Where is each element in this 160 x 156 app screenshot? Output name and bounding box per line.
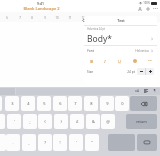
button[interactable]: !: [53, 134, 67, 151]
staticText: Text: [117, 18, 125, 23]
staticText: £: [76, 119, 79, 124]
staticText: 9: [106, 101, 109, 106]
button[interactable]: ): [54, 114, 68, 129]
button[interactable]: 5: [37, 96, 51, 111]
staticText: !: [59, 140, 61, 145]
button[interactable]: 4: [21, 96, 35, 111]
button[interactable]: Text colour: [127, 56, 142, 66]
staticText: U: [118, 59, 121, 64]
button[interactable]: ,: [22, 134, 36, 151]
staticText: 7: [74, 101, 77, 106]
staticText: ,: [28, 140, 30, 145]
staticText: 0: [121, 101, 124, 106]
button[interactable]: Body*: [84, 32, 157, 45]
button[interactable]: 3: [5, 96, 19, 111]
button[interactable]: Decrease size: [137, 68, 145, 75]
staticText: .: [12, 140, 14, 145]
button[interactable]: Paragraph style: [152, 88, 157, 93]
button[interactable]: @: [101, 114, 115, 129]
button[interactable]: Font: [84, 46, 157, 56]
button[interactable]: Increase size: [146, 68, 154, 75]
staticText: Blank Landscape 2: [23, 6, 60, 11]
staticText: Helvetica 24 pt: [87, 27, 105, 31]
button[interactable]: Back: [80, 17, 86, 23]
button[interactable]: 8: [84, 96, 98, 111]
staticText: Helvetica: [135, 49, 149, 53]
button[interactable]: 7: [68, 96, 82, 111]
staticText: 10: [55, 16, 59, 20]
staticText: •••: [148, 59, 152, 63]
staticText: ): [60, 119, 62, 124]
staticText: ¶: [153, 88, 156, 93]
staticText: 5: [43, 101, 46, 106]
staticText: ': [76, 140, 77, 145]
staticText: ': [14, 119, 15, 124]
button[interactable]: ;: [23, 114, 37, 129]
staticText: ;: [29, 119, 31, 124]
button[interactable]: Format: [137, 6, 142, 11]
button[interactable]: Key: [0, 134, 6, 151]
button[interactable]: •••: [142, 56, 157, 66]
staticText: ?: [44, 140, 46, 145]
staticText: B: [90, 59, 93, 64]
button[interactable]: More options: [153, 6, 158, 11]
staticText: 6: [59, 101, 62, 106]
button[interactable]: ': [69, 134, 83, 151]
staticText: I: [104, 59, 106, 64]
button[interactable]: I: [98, 56, 112, 66]
staticText: 8: [90, 101, 93, 106]
staticText: Size: [87, 70, 93, 74]
button[interactable]: Key: [0, 114, 5, 129]
staticText: 12: [81, 16, 85, 20]
staticText: 7: [19, 16, 21, 20]
button[interactable]: B: [84, 56, 98, 66]
button[interactable]: .: [6, 134, 20, 151]
staticText: 24 pt: [127, 70, 135, 74]
button[interactable]: ": [85, 134, 99, 151]
staticText: (: [44, 119, 46, 124]
staticText: Body*: [87, 33, 112, 45]
button[interactable]: Backspace: [130, 96, 157, 111]
button[interactable]: Return: [126, 114, 157, 129]
button[interactable]: 9: [100, 96, 114, 111]
button[interactable]: Text size: [135, 89, 139, 93]
staticText: 8: [31, 16, 33, 20]
button[interactable]: 0: [115, 96, 129, 111]
staticText: 100%: [143, 1, 150, 5]
button[interactable]: £: [70, 114, 84, 129]
button[interactable]: Alignment: [143, 88, 148, 93]
button[interactable]: &: [86, 114, 100, 129]
staticText: 9:41: [37, 1, 44, 6]
button[interactable]: Insert: [145, 6, 150, 11]
button[interactable]: ': [7, 114, 21, 129]
staticText: @: [106, 119, 110, 124]
button[interactable]: Key: [0, 96, 2, 111]
staticText: aA: [135, 89, 139, 93]
staticText: &: [92, 119, 95, 124]
staticText: 6: [6, 16, 8, 20]
staticText: ": [91, 140, 93, 145]
button[interactable]: (: [38, 114, 52, 129]
button[interactable]: Hide keyboard: [137, 134, 157, 151]
staticText: 9: [44, 16, 46, 20]
staticText: 3: [11, 101, 14, 106]
button[interactable]: 6: [53, 96, 67, 111]
staticText: 4: [27, 101, 30, 106]
staticText: 11: [68, 16, 72, 20]
button[interactable]: ?: [38, 134, 52, 151]
button[interactable]: U: [112, 56, 127, 66]
staticText: Font: [87, 49, 94, 53]
staticText: return: [136, 119, 147, 124]
